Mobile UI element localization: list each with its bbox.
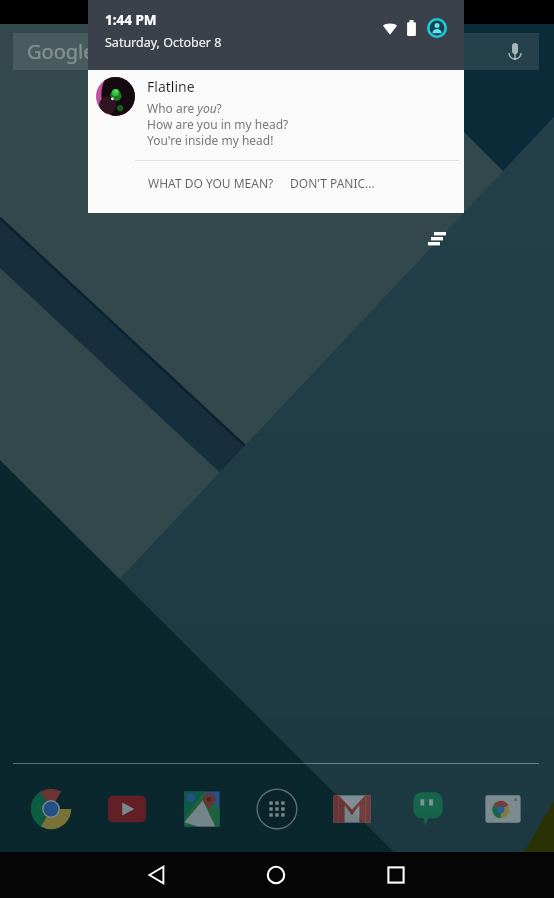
other: Battery [406, 20, 417, 36]
button[interactable]: Back [134, 852, 180, 898]
staticText: 1:44 PM [105, 11, 157, 29]
button[interactable]: Photos [479, 785, 527, 833]
other: Wifi [383, 20, 397, 36]
staticText: Saturday, October 8 [105, 34, 222, 51]
button[interactable]: Google [13, 33, 539, 70]
button[interactable]: Recents [373, 852, 419, 898]
button[interactable]: Hangouts [404, 785, 452, 833]
button[interactable]: Home [253, 852, 299, 898]
other: More notifications [426, 230, 448, 252]
staticText: Google [27, 38, 95, 65]
button[interactable]: Maps [178, 785, 226, 833]
button[interactable]: Chrome [27, 785, 75, 833]
staticText: DON'T PANIC... [290, 175, 375, 191]
button[interactable]: Apps [253, 785, 301, 833]
staticText: Who are you? [147, 100, 222, 116]
button[interactable]: WHAT DO YOU MEAN? [140, 168, 282, 198]
staticText: Flatline [147, 77, 195, 96]
staticText: You're inside my head! [147, 132, 274, 148]
button[interactable]: YouTube [103, 785, 151, 833]
staticText: WHAT DO YOU MEAN? [148, 175, 274, 191]
button[interactable]: DON'T PANIC... [282, 168, 383, 198]
button[interactable]: Gmail [328, 785, 376, 833]
other: Voice search [504, 41, 526, 63]
other: Account [427, 18, 447, 38]
staticText: How are you in my head? [147, 116, 289, 132]
